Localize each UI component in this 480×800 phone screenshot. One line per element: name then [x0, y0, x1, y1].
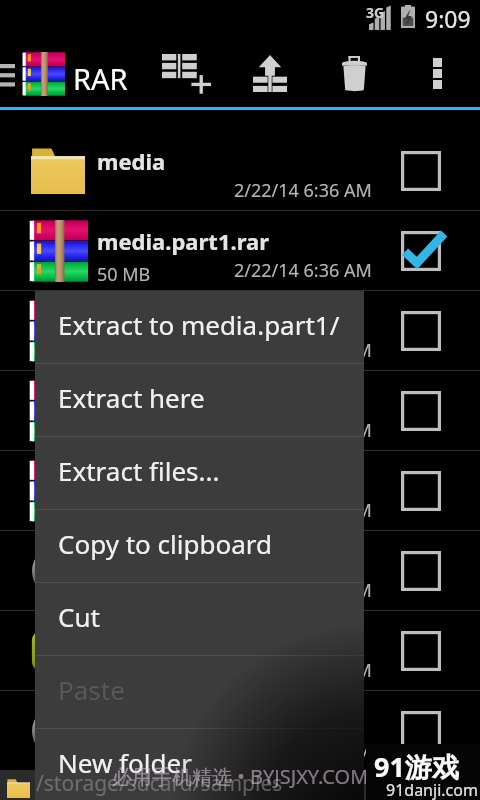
button[interactable]: sample.iso [0, 531, 480, 610]
staticText: media [97, 146, 166, 176]
button[interactable]: Select sample.iso [390, 531, 452, 610]
button[interactable]: media.part3.rar [0, 371, 480, 450]
staticText: Cut [58, 599, 100, 634]
staticText: media.part3.rar [97, 386, 270, 416]
staticText: /storage/sdcard/samples [36, 780, 283, 800]
staticText: media.part1.rar [97, 226, 270, 256]
button[interactable]: sample.txt [0, 771, 480, 800]
button[interactable]: New folder [35, 729, 364, 800]
staticText: Extract files... [58, 453, 220, 488]
staticText: 2/22/14 6:36 AM [234, 418, 372, 443]
staticText: sample.txt [97, 786, 215, 800]
button[interactable]: Select media [390, 131, 452, 210]
staticText: 2/22/14 6:36 AM [234, 498, 372, 523]
staticText: 2/22/14 6:36 AM [234, 338, 372, 363]
button[interactable]: Select sample.apk [390, 611, 452, 690]
staticText: 50 MB [97, 422, 151, 447]
staticText: Copy to clipboard [58, 526, 272, 561]
staticText: sample2.iso [97, 706, 227, 736]
button[interactable]: More options [416, 44, 460, 99]
staticText: sample.apk [97, 626, 224, 656]
button[interactable]: Paste [35, 656, 364, 728]
staticText: 50 MB [97, 262, 151, 287]
staticText: 4.1 MB [97, 582, 156, 607]
staticText: 2/22/14 6:36 AM [234, 178, 372, 203]
button[interactable]: /storage/sdcard/samples [0, 770, 480, 800]
button[interactable]: Add to archive [152, 44, 220, 99]
button[interactable]: Select media.part1.rar [390, 211, 452, 290]
button[interactable]: media.part1.rar [0, 211, 480, 290]
button[interactable]: sample.apk [0, 611, 480, 690]
staticText: 18 MB [97, 502, 151, 527]
button[interactable]: media.part2.rar [0, 291, 480, 370]
button[interactable]: Select media.part3.rar [390, 371, 452, 450]
staticText: 必用手机精选 • BYJSJXY.COM [112, 763, 369, 790]
button[interactable]: media.part4.rar [0, 451, 480, 530]
staticText: Extract here [58, 380, 205, 415]
button[interactable]: media [0, 131, 480, 210]
staticText: 2/22/14 6:36 AM [234, 738, 372, 763]
staticText: 3G [366, 3, 385, 22]
staticText: Paste [58, 672, 125, 707]
staticText: 2/22/14 6:36 AM [234, 258, 372, 283]
staticText: 2/22/14 6:36 AM [234, 658, 372, 683]
staticText: RAR [73, 59, 128, 98]
button[interactable]: Navigate up [0, 56, 20, 90]
button[interactable]: Cut [35, 583, 364, 655]
button[interactable]: Extract [240, 44, 300, 99]
button[interactable]: Select sample2.iso [390, 691, 452, 770]
staticText: 9:09 [425, 3, 471, 34]
staticText: 2/22/14 6:36 AM [234, 578, 372, 603]
staticText: 50 MB [97, 342, 151, 367]
button[interactable]: Copy to clipboard [35, 510, 364, 582]
button[interactable]: Select media.part2.rar [390, 291, 452, 370]
button[interactable]: Extract here [35, 364, 364, 436]
button[interactable]: sample2.iso [0, 691, 480, 770]
staticText: media.part4.rar [97, 466, 270, 496]
button[interactable]: Select media.part4.rar [390, 451, 452, 530]
staticText: sample.iso [97, 546, 214, 576]
staticText: 1.2 MB [97, 742, 156, 767]
staticText: /storage/sdcard/samples [36, 769, 283, 798]
button[interactable]: Extract to media.part1/ [35, 291, 364, 363]
staticText: Extract to media.part1/ [58, 307, 340, 342]
button[interactable]: Select sample.txt [390, 771, 452, 800]
staticText: New folder [58, 745, 192, 780]
button[interactable]: Delete [330, 44, 380, 99]
staticText: media.part2.rar [97, 306, 270, 336]
button[interactable]: Extract files... [35, 437, 364, 509]
staticText: 91游戏 [374, 748, 459, 785]
staticText: 91danji.com [386, 779, 478, 800]
